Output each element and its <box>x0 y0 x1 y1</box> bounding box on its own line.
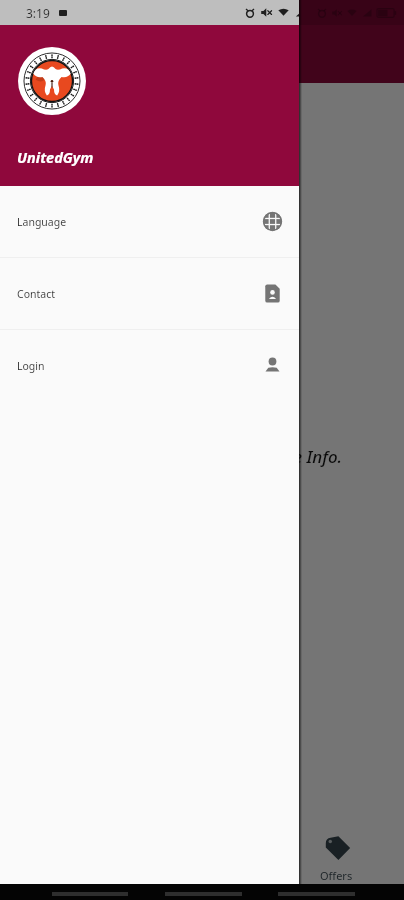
staticText: Login <box>17 359 45 373</box>
staticText: Language <box>17 215 67 229</box>
other: Offers <box>323 834 351 862</box>
other: Contact <box>263 284 282 303</box>
other: Login <box>263 356 282 375</box>
button[interactable]: Offers <box>269 834 404 884</box>
staticText: 3:19 <box>26 5 50 21</box>
button[interactable]: Contact <box>0 258 299 329</box>
other: Language <box>263 212 282 231</box>
staticText: Offers <box>320 868 353 883</box>
staticText: Come visit us for more Info. <box>130 445 343 468</box>
staticText: UnitedGym <box>17 147 94 167</box>
staticText: Contact <box>17 287 55 301</box>
button[interactable]: Language <box>0 186 299 257</box>
button[interactable]: Login <box>0 330 299 401</box>
